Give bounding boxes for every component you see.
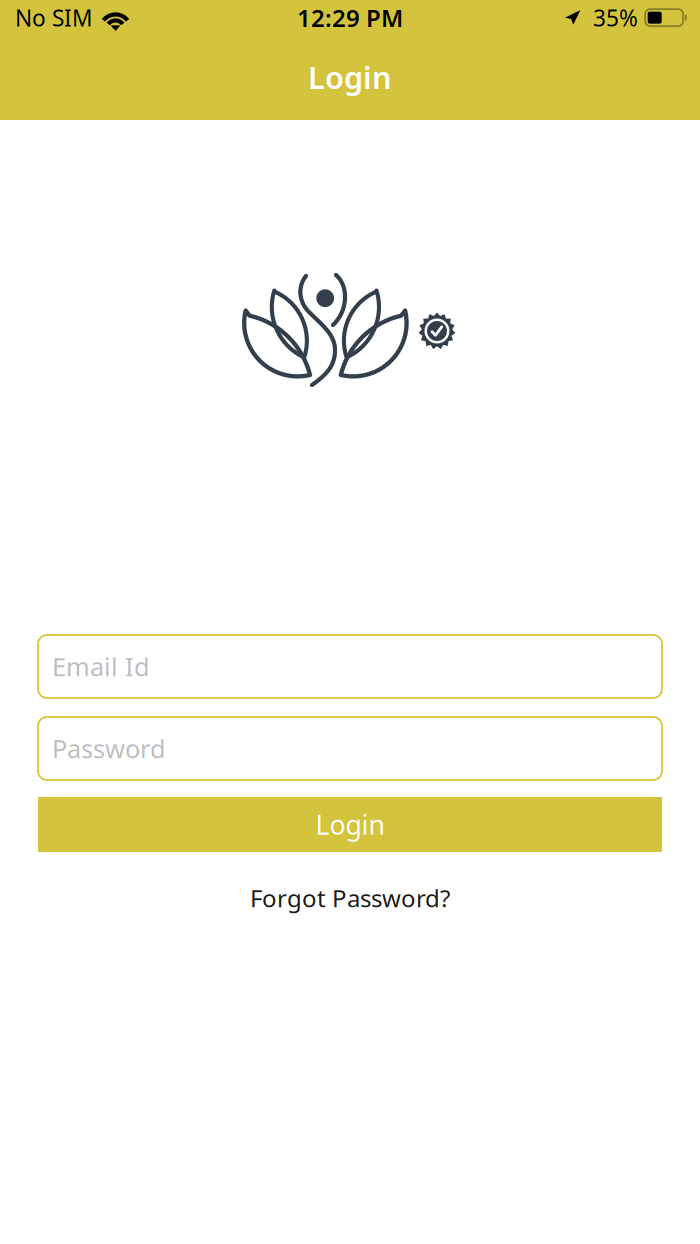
button[interactable]: Forgot Password? bbox=[250, 882, 450, 914]
staticText: Email Id bbox=[52, 650, 150, 683]
staticText: 12:29 PM bbox=[297, 2, 403, 34]
staticText: Login bbox=[315, 807, 384, 842]
staticText: Password bbox=[52, 732, 166, 765]
staticText: No SIM bbox=[15, 3, 93, 33]
staticText: Login bbox=[308, 57, 392, 97]
staticText: 35% bbox=[593, 3, 638, 33]
staticText: Forgot Password? bbox=[250, 882, 450, 914]
button[interactable]: Login bbox=[38, 797, 662, 852]
button[interactable]: Password bbox=[38, 717, 662, 780]
button[interactable]: Email Id bbox=[38, 635, 662, 698]
